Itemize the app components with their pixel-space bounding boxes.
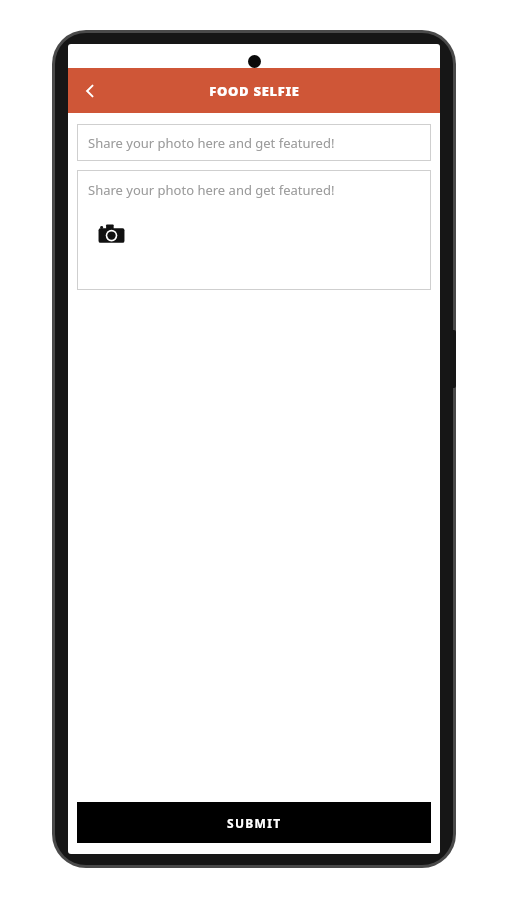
staticText: SUBMIT — [227, 815, 282, 831]
staticText: Share your photo here and get featured! — [88, 181, 335, 199]
button[interactable]: Share your photo here and get featured! — [77, 124, 431, 161]
button[interactable]: SUBMIT — [77, 802, 431, 843]
staticText: Share your photo here and get featured! — [88, 134, 335, 152]
button[interactable]: Take photo — [95, 218, 127, 250]
staticText: FOOD SELFIE — [209, 82, 300, 100]
button[interactable]: Share your photo here and get featured! — [77, 170, 431, 290]
button[interactable]: Back — [68, 69, 112, 113]
